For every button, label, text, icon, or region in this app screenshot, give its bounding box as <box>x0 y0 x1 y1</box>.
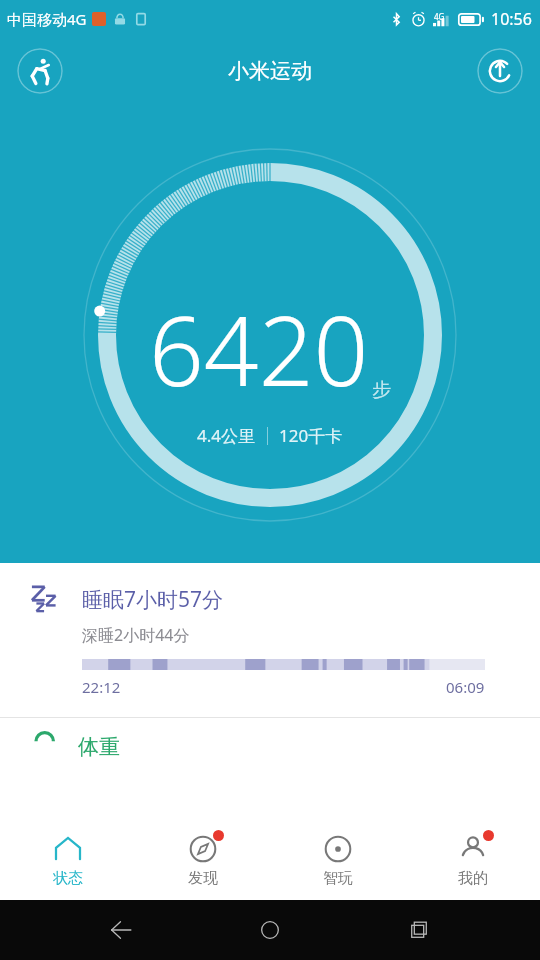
button[interactable]: Sync <box>477 48 523 94</box>
staticText: 10:56 <box>491 8 532 30</box>
button[interactable]: 智玩 <box>270 822 405 900</box>
staticText: 中国移动4G <box>7 9 87 29</box>
staticText: 睡眠7小时57分 <box>82 585 224 614</box>
staticText: 步 <box>372 378 391 402</box>
button[interactable]: 状态 <box>0 822 135 900</box>
button[interactable]: Home <box>242 902 298 958</box>
button[interactable]: 睡眠7小时57分 <box>0 563 540 717</box>
staticText: 我的 <box>458 869 488 888</box>
staticText: 体重 <box>78 734 120 760</box>
button[interactable]: Back <box>93 902 149 958</box>
staticText: 状态 <box>53 869 83 888</box>
button[interactable]: 发现 <box>135 822 270 900</box>
staticText: 小米运动 <box>228 58 312 84</box>
staticText: 06:09 <box>446 677 485 697</box>
button[interactable]: Recents <box>391 902 447 958</box>
staticText: 22:12 <box>82 677 121 697</box>
staticText: 120千卡 <box>279 424 343 447</box>
staticText: 智玩 <box>323 869 353 888</box>
button[interactable]: 我的 <box>405 822 540 900</box>
staticText: 4G <box>434 11 445 22</box>
staticText: 深睡2小时44分 <box>82 624 190 646</box>
button[interactable]: 体重 <box>0 718 540 822</box>
staticText: 4.4公里 <box>197 424 256 447</box>
button[interactable]: Start workout <box>17 48 63 94</box>
staticText: 6420 <box>149 283 369 414</box>
staticText: 发现 <box>188 869 218 888</box>
